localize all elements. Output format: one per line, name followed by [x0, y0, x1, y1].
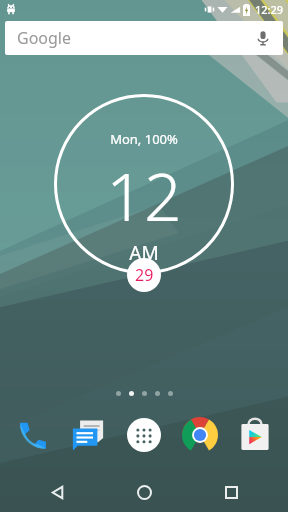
- button[interactable]: Recent apps: [201, 472, 261, 512]
- button[interactable]: Home: [114, 472, 174, 512]
- button[interactable]: Play Store: [232, 412, 278, 458]
- button[interactable]: Messages: [65, 412, 111, 458]
- staticText: Mon, 100%: [110, 130, 178, 148]
- staticText: Google: [17, 27, 255, 49]
- button[interactable]: Google: [5, 21, 283, 55]
- staticText: 12:29: [255, 2, 284, 17]
- button[interactable]: All apps: [121, 412, 167, 458]
- staticText: AM: [129, 240, 159, 266]
- button[interactable]: Phone: [10, 412, 56, 458]
- staticText: 29: [135, 264, 154, 286]
- button[interactable]: Chrome: [177, 412, 223, 458]
- button[interactable]: Back: [27, 472, 87, 512]
- button[interactable]: 29: [127, 258, 161, 292]
- staticText: 12: [106, 150, 182, 240]
- button[interactable]: Mon, 100%: [54, 94, 234, 274]
- other: Voice search: [255, 30, 271, 46]
